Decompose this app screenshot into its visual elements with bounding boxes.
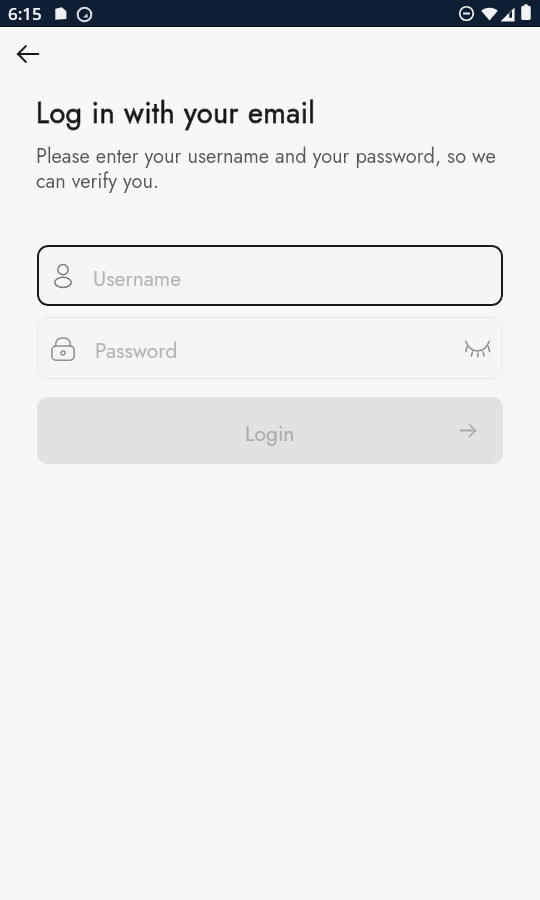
button[interactable]: Password [37,317,503,379]
staticText: Log in with your email [36,92,316,134]
staticText: Login [245,419,295,449]
staticText: Please enter your username and your pass… [36,142,502,195]
staticText: 6:15 [8,2,42,25]
staticText: Log in with your email [36,92,316,134]
button[interactable]: Show password [455,326,499,370]
staticText: Password [95,336,178,366]
button[interactable]: Back [4,30,52,78]
button[interactable]: Username [37,245,503,306]
button[interactable]: Login [37,397,503,464]
staticText: Username [93,264,181,294]
